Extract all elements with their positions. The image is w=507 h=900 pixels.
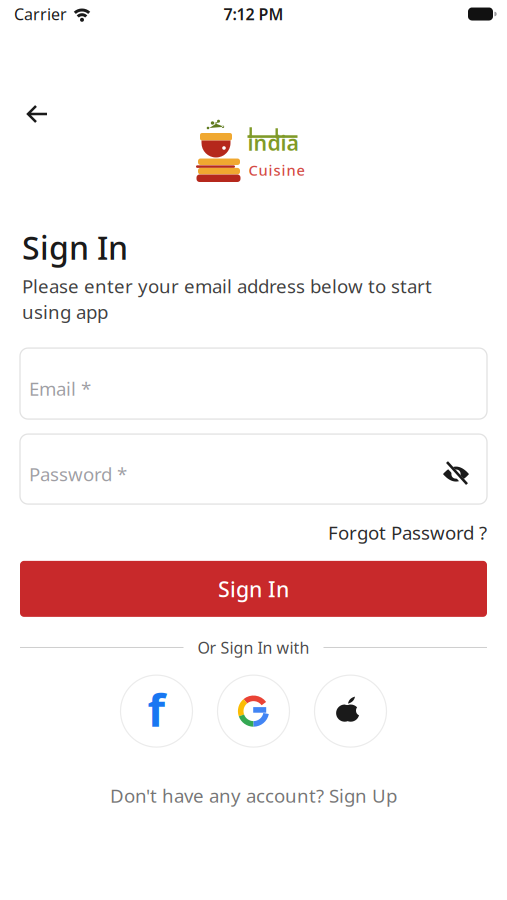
button[interactable]: Sign in with Facebook [120, 675, 192, 747]
staticText: Please enter your email address below to… [22, 273, 432, 324]
staticText: india [247, 128, 298, 157]
staticText: Sign Up [329, 783, 397, 808]
button[interactable]: Show password [442, 463, 470, 485]
button[interactable]: Email * [20, 348, 487, 419]
button[interactable]: Sign in with Google [217, 675, 289, 747]
staticText: Or Sign In with [197, 637, 309, 658]
staticText: Email * [29, 376, 91, 401]
button[interactable]: Back [0, 28, 48, 123]
button[interactable]: Sign In [20, 561, 487, 617]
staticText: Password * [29, 462, 127, 486]
staticText: 7:12 PM [223, 3, 283, 25]
button[interactable]: Sign in with Apple [314, 675, 386, 747]
button[interactable]: Password * [20, 434, 487, 504]
staticText: Sign In [22, 226, 128, 268]
staticText: Don't have any account? [110, 783, 324, 808]
button[interactable]: Forgot Password ? [328, 520, 487, 545]
staticText: Carrier [14, 3, 67, 25]
staticText: Cuisine [248, 160, 304, 180]
staticText: f [147, 679, 165, 739]
staticText: Forgot Password ? [328, 520, 487, 545]
staticText: Sign In [218, 575, 289, 603]
button[interactable]: Sign Up [110, 783, 397, 808]
